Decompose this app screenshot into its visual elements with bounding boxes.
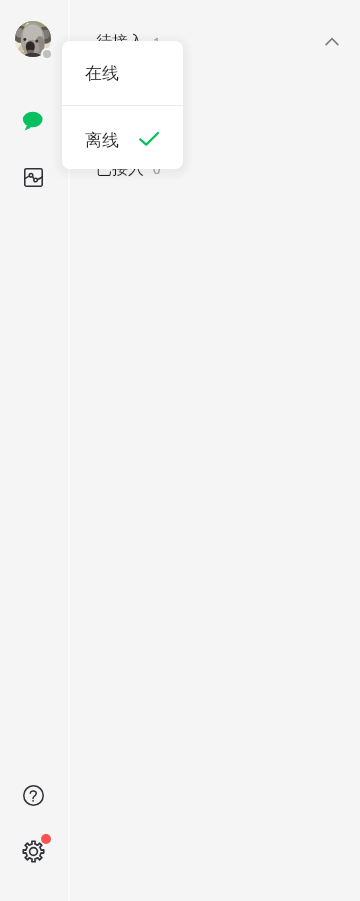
staticText: 离线 — [85, 130, 119, 151]
staticText: 1 — [153, 33, 161, 51]
button[interactable]: Help — [23, 785, 44, 806]
button[interactable]: Profile — [15, 21, 51, 57]
staticText: 在线 — [85, 63, 119, 84]
button[interactable]: 已接入 — [69, 152, 360, 186]
staticText: 已接入 — [96, 159, 144, 179]
staticText: 待接入 — [96, 32, 144, 52]
button[interactable]: Settings — [22, 840, 45, 863]
button[interactable]: Moments — [24, 168, 43, 187]
button[interactable]: Chats — [22, 110, 43, 131]
button[interactable]: 在线 — [62, 41, 183, 106]
button[interactable]: 离线 — [62, 109, 183, 169]
staticText: 0 — [153, 160, 161, 178]
button[interactable]: 待接入 — [69, 24, 360, 60]
button[interactable]: Collapse section — [321, 31, 343, 53]
